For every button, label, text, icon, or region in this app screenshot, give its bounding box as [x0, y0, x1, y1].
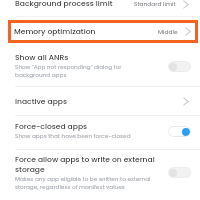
staticText: Middle [158, 28, 178, 36]
button[interactable]: Memory optimization [8, 20, 198, 43]
button[interactable]: Switch off [168, 167, 191, 178]
staticText: Inactive apps [15, 97, 68, 107]
button[interactable]: Force allow apps to write on external st… [0, 155, 200, 200]
staticText: Standard limit [134, 0, 176, 8]
button[interactable]: Inactive apps [0, 87, 200, 116]
button[interactable]: Show all ANRs [0, 53, 200, 87]
staticText: Force-closed apps [15, 122, 88, 132]
staticText: Force allow apps to write on external st… [15, 155, 155, 175]
staticText: Makes any app eligible to be written to … [15, 175, 151, 191]
button[interactable]: Switch on [168, 126, 191, 137]
button[interactable]: Background process limit [0, 0, 200, 16]
button[interactable]: Switch off [168, 61, 191, 72]
staticText: Show apps that have been force-closed [15, 132, 131, 140]
staticText: Memory optimization [14, 27, 96, 37]
staticText: Show all ANRs [15, 53, 69, 63]
staticText: Show "App not responding" dialog for bac… [15, 63, 122, 79]
button[interactable]: Force-closed apps [0, 122, 200, 152]
staticText: Background process limit [15, 0, 113, 9]
